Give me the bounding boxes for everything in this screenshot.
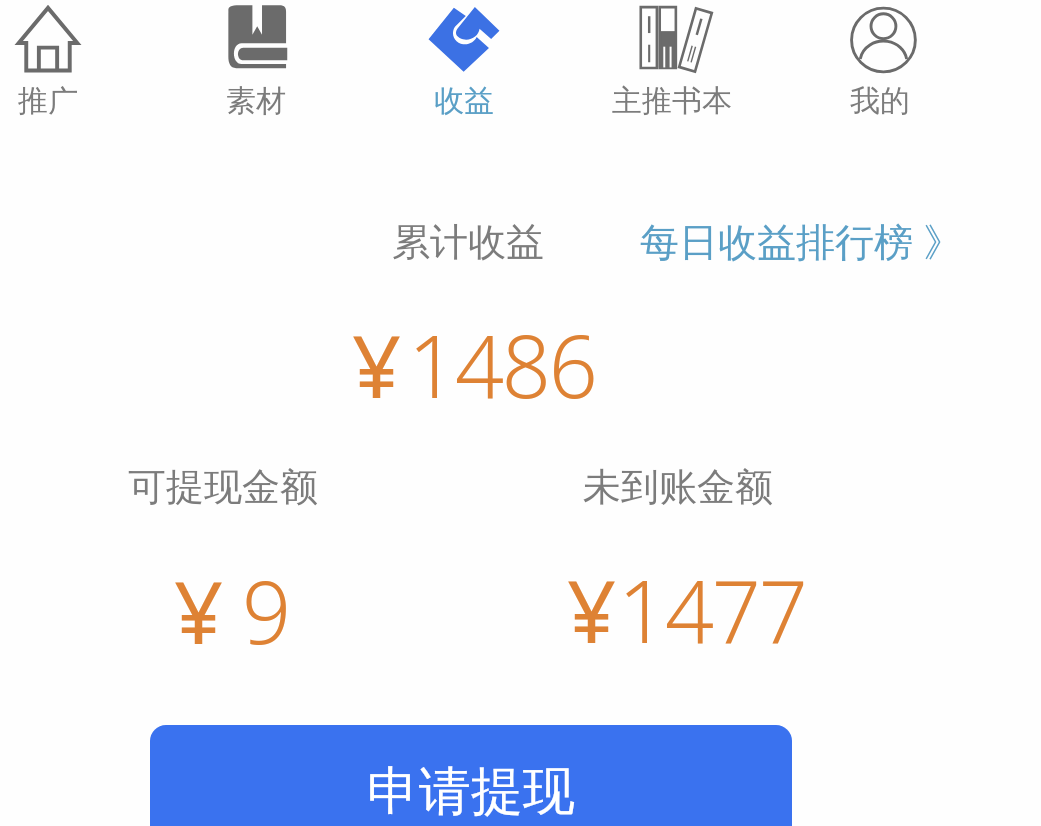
other: Promotion [12, 0, 84, 70]
staticText: 1477 [618, 551, 806, 668]
other: Materials [220, 0, 292, 70]
button[interactable]: Profile [776, 0, 984, 122]
staticText: ¥ [352, 306, 402, 423]
staticText: ¥ [174, 552, 224, 669]
other: Featured books [636, 0, 708, 70]
button[interactable]: Promotion [0, 0, 152, 122]
other: Profile [844, 0, 916, 70]
button[interactable]: 每日收益排行榜 》 [622, 200, 981, 281]
staticText: 每日收益排行榜 》 [640, 214, 963, 267]
staticText: 未到账金额 [583, 463, 773, 511]
staticText: 收益 [434, 82, 494, 120]
staticText: 素材 [226, 82, 286, 120]
staticText: 累计收益 [392, 218, 544, 266]
staticText: 申请提现 [367, 759, 575, 825]
button[interactable]: Earnings [360, 0, 568, 122]
staticText: 主推书本 [612, 82, 732, 120]
button[interactable]: Materials [152, 0, 360, 122]
staticText: 我的 [850, 82, 910, 120]
staticText: 推广 [18, 82, 78, 120]
button[interactable]: 申请提现 [150, 725, 792, 826]
staticText: 1486 [408, 306, 596, 423]
staticText: ¥ [567, 551, 617, 668]
other: Earnings [428, 0, 500, 70]
button[interactable]: Featured books [568, 0, 776, 122]
staticText: 可提现金额 [128, 463, 318, 511]
staticText: 9 [242, 552, 289, 669]
